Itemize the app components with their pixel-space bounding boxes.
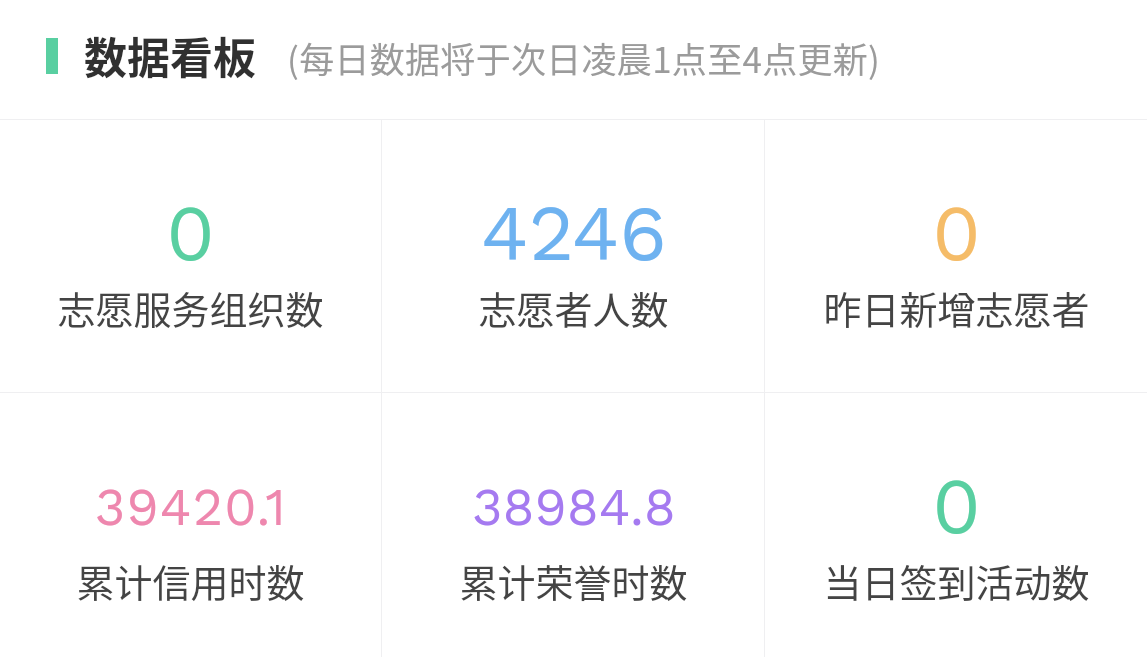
staticText: 39420.1 <box>95 477 287 538</box>
button[interactable]: 昨日新增志愿者 0 <box>765 120 1147 392</box>
staticText: 数据看板 <box>84 24 256 86</box>
staticText: 志愿者人数 <box>478 280 669 335</box>
staticText: 0 <box>932 460 981 551</box>
button[interactable]: 志愿者人数 4246 <box>382 120 764 392</box>
button[interactable]: 当日签到活动数 0 <box>765 393 1147 657</box>
button[interactable]: 志愿服务组织数 0 <box>0 120 381 392</box>
button[interactable]: 累计信用时数 39420.1 <box>0 393 381 657</box>
button[interactable]: 累计荣誉时数 38984.8 <box>382 393 764 657</box>
staticText: 累计信用时数 <box>76 553 305 608</box>
staticText: 38984.8 <box>472 477 676 538</box>
staticText: 昨日新增志愿者 <box>823 280 1090 335</box>
staticText: 0 <box>932 187 981 278</box>
staticText: 志愿服务组织数 <box>57 280 324 335</box>
staticText: 累计荣誉时数 <box>459 553 688 608</box>
staticText: 4246 <box>481 187 667 278</box>
staticText: (每日数据将于次日凌晨1点至4点更新) <box>287 32 881 83</box>
staticText: 当日签到活动数 <box>823 553 1090 608</box>
staticText: 0 <box>166 187 215 278</box>
